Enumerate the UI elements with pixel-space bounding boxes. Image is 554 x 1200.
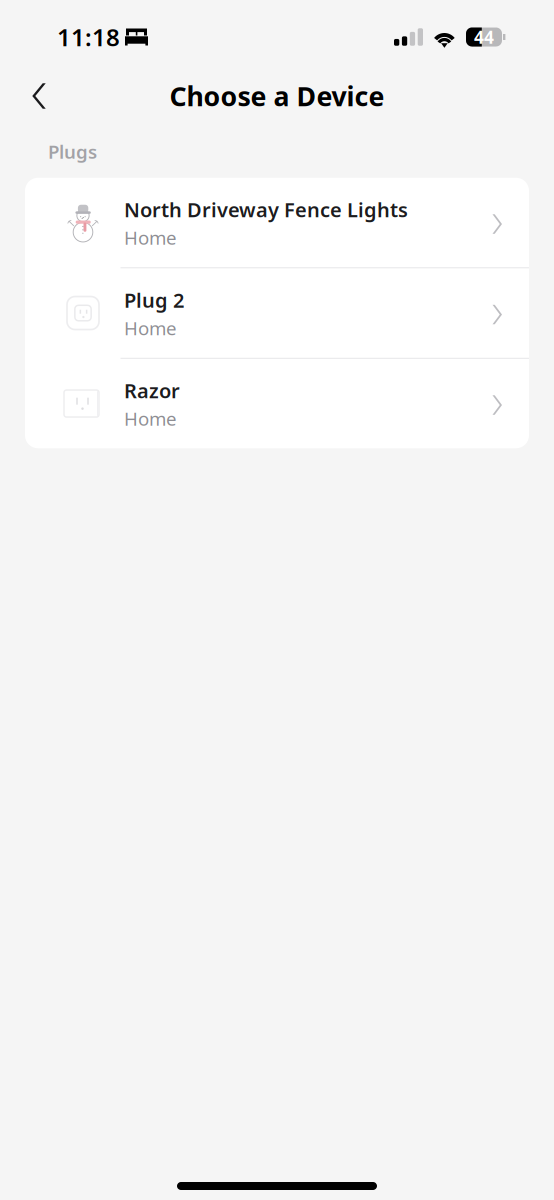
button[interactable]: Back <box>0 71 62 121</box>
button[interactable]: Plug 2 <box>25 268 529 358</box>
staticText: Razor <box>124 377 180 404</box>
staticText: 44 <box>474 25 494 48</box>
button[interactable]: North Driveway Fence Lights <box>25 178 529 267</box>
staticText: Plugs <box>48 139 97 164</box>
staticText: Home <box>124 225 177 250</box>
staticText: Home <box>124 406 177 431</box>
staticText: 11:18 <box>57 21 120 53</box>
staticText: Plug 2 <box>124 287 184 313</box>
staticText: North Driveway Fence Lights <box>124 196 408 223</box>
button[interactable]: Razor <box>25 359 529 448</box>
staticText: Home <box>124 316 177 340</box>
staticText: Choose a Device <box>169 78 384 114</box>
